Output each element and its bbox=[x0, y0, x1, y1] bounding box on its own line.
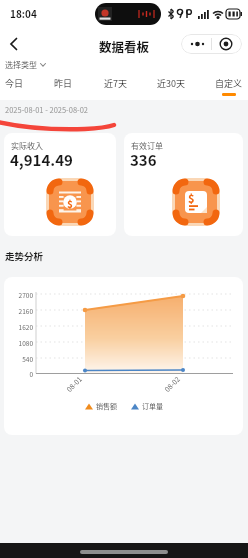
staticText: 08-01 bbox=[64, 374, 84, 394]
button[interactable]: 实际收入 bbox=[4, 133, 116, 236]
staticText: 数据看板 bbox=[99, 37, 150, 55]
button[interactable]: 选择类型 bbox=[5, 59, 46, 71]
staticText: 实际收入 bbox=[11, 140, 43, 152]
staticText: 选择类型 bbox=[5, 59, 37, 71]
button[interactable]: 今日 bbox=[5, 77, 24, 90]
staticText: 有效订单 bbox=[131, 140, 163, 152]
staticText: 4,914.49 bbox=[10, 149, 73, 171]
button[interactable]: 近7天 bbox=[104, 77, 127, 90]
staticText: 18:04 bbox=[10, 6, 37, 20]
staticText: 昨日 bbox=[54, 77, 73, 90]
button[interactable] bbox=[10, 38, 18, 50]
button[interactable]: 昨日 bbox=[54, 77, 73, 90]
staticText: 1080 bbox=[10, 338, 33, 347]
staticText: 销售额 bbox=[96, 401, 117, 411]
staticText: 近30天 bbox=[157, 77, 185, 90]
staticText: 1620 bbox=[10, 322, 33, 331]
staticText: 08-02 bbox=[162, 374, 182, 394]
staticText: 2160 bbox=[10, 306, 33, 315]
staticText: 近7天 bbox=[104, 77, 127, 90]
button[interactable]: 近30天 bbox=[157, 77, 185, 90]
staticText: 2025-08-01 - 2025-08-02 bbox=[5, 104, 88, 115]
staticText: 走势分析 bbox=[5, 249, 44, 263]
staticText: 2700 bbox=[10, 290, 33, 299]
button[interactable] bbox=[181, 34, 242, 54]
staticText: 今日 bbox=[5, 77, 24, 90]
button[interactable]: 有效订单 bbox=[124, 133, 243, 236]
staticText: $ bbox=[188, 190, 195, 206]
button[interactable]: 订单量 bbox=[131, 401, 163, 411]
staticText: 336 bbox=[130, 149, 157, 171]
staticText: 订单量 bbox=[142, 401, 163, 411]
button[interactable]: 自定义 bbox=[215, 77, 243, 96]
staticText: 自定义 bbox=[215, 77, 243, 90]
staticText: 0 bbox=[10, 369, 33, 378]
button[interactable]: 销售额 bbox=[85, 401, 117, 411]
staticText: 540 bbox=[10, 354, 33, 363]
staticText: $ bbox=[67, 196, 73, 210]
